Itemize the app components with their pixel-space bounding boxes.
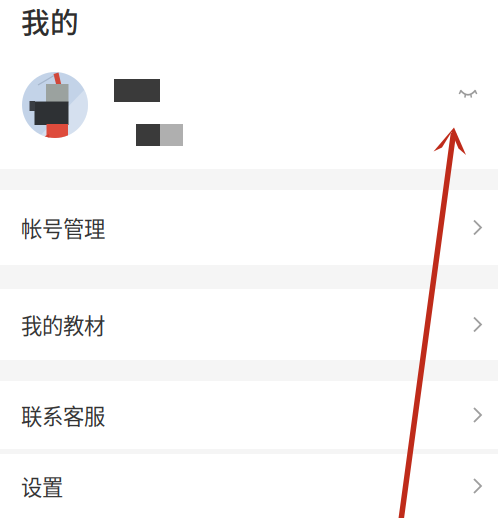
button[interactable]: 帐号管理 xyxy=(0,190,498,265)
button[interactable]: 设置 xyxy=(0,454,498,518)
staticText: 设置 xyxy=(21,471,63,501)
button[interactable]: 联系客服 xyxy=(0,381,498,449)
staticText: 我的 xyxy=(21,0,79,41)
button[interactable]: Hide details xyxy=(452,80,486,110)
staticText: 我的教材 xyxy=(21,309,105,340)
staticText: 帐号管理 xyxy=(21,212,105,243)
button[interactable]: Profile xyxy=(22,72,442,150)
button[interactable]: 我的教材 xyxy=(0,289,498,360)
staticText: 联系客服 xyxy=(21,400,105,430)
